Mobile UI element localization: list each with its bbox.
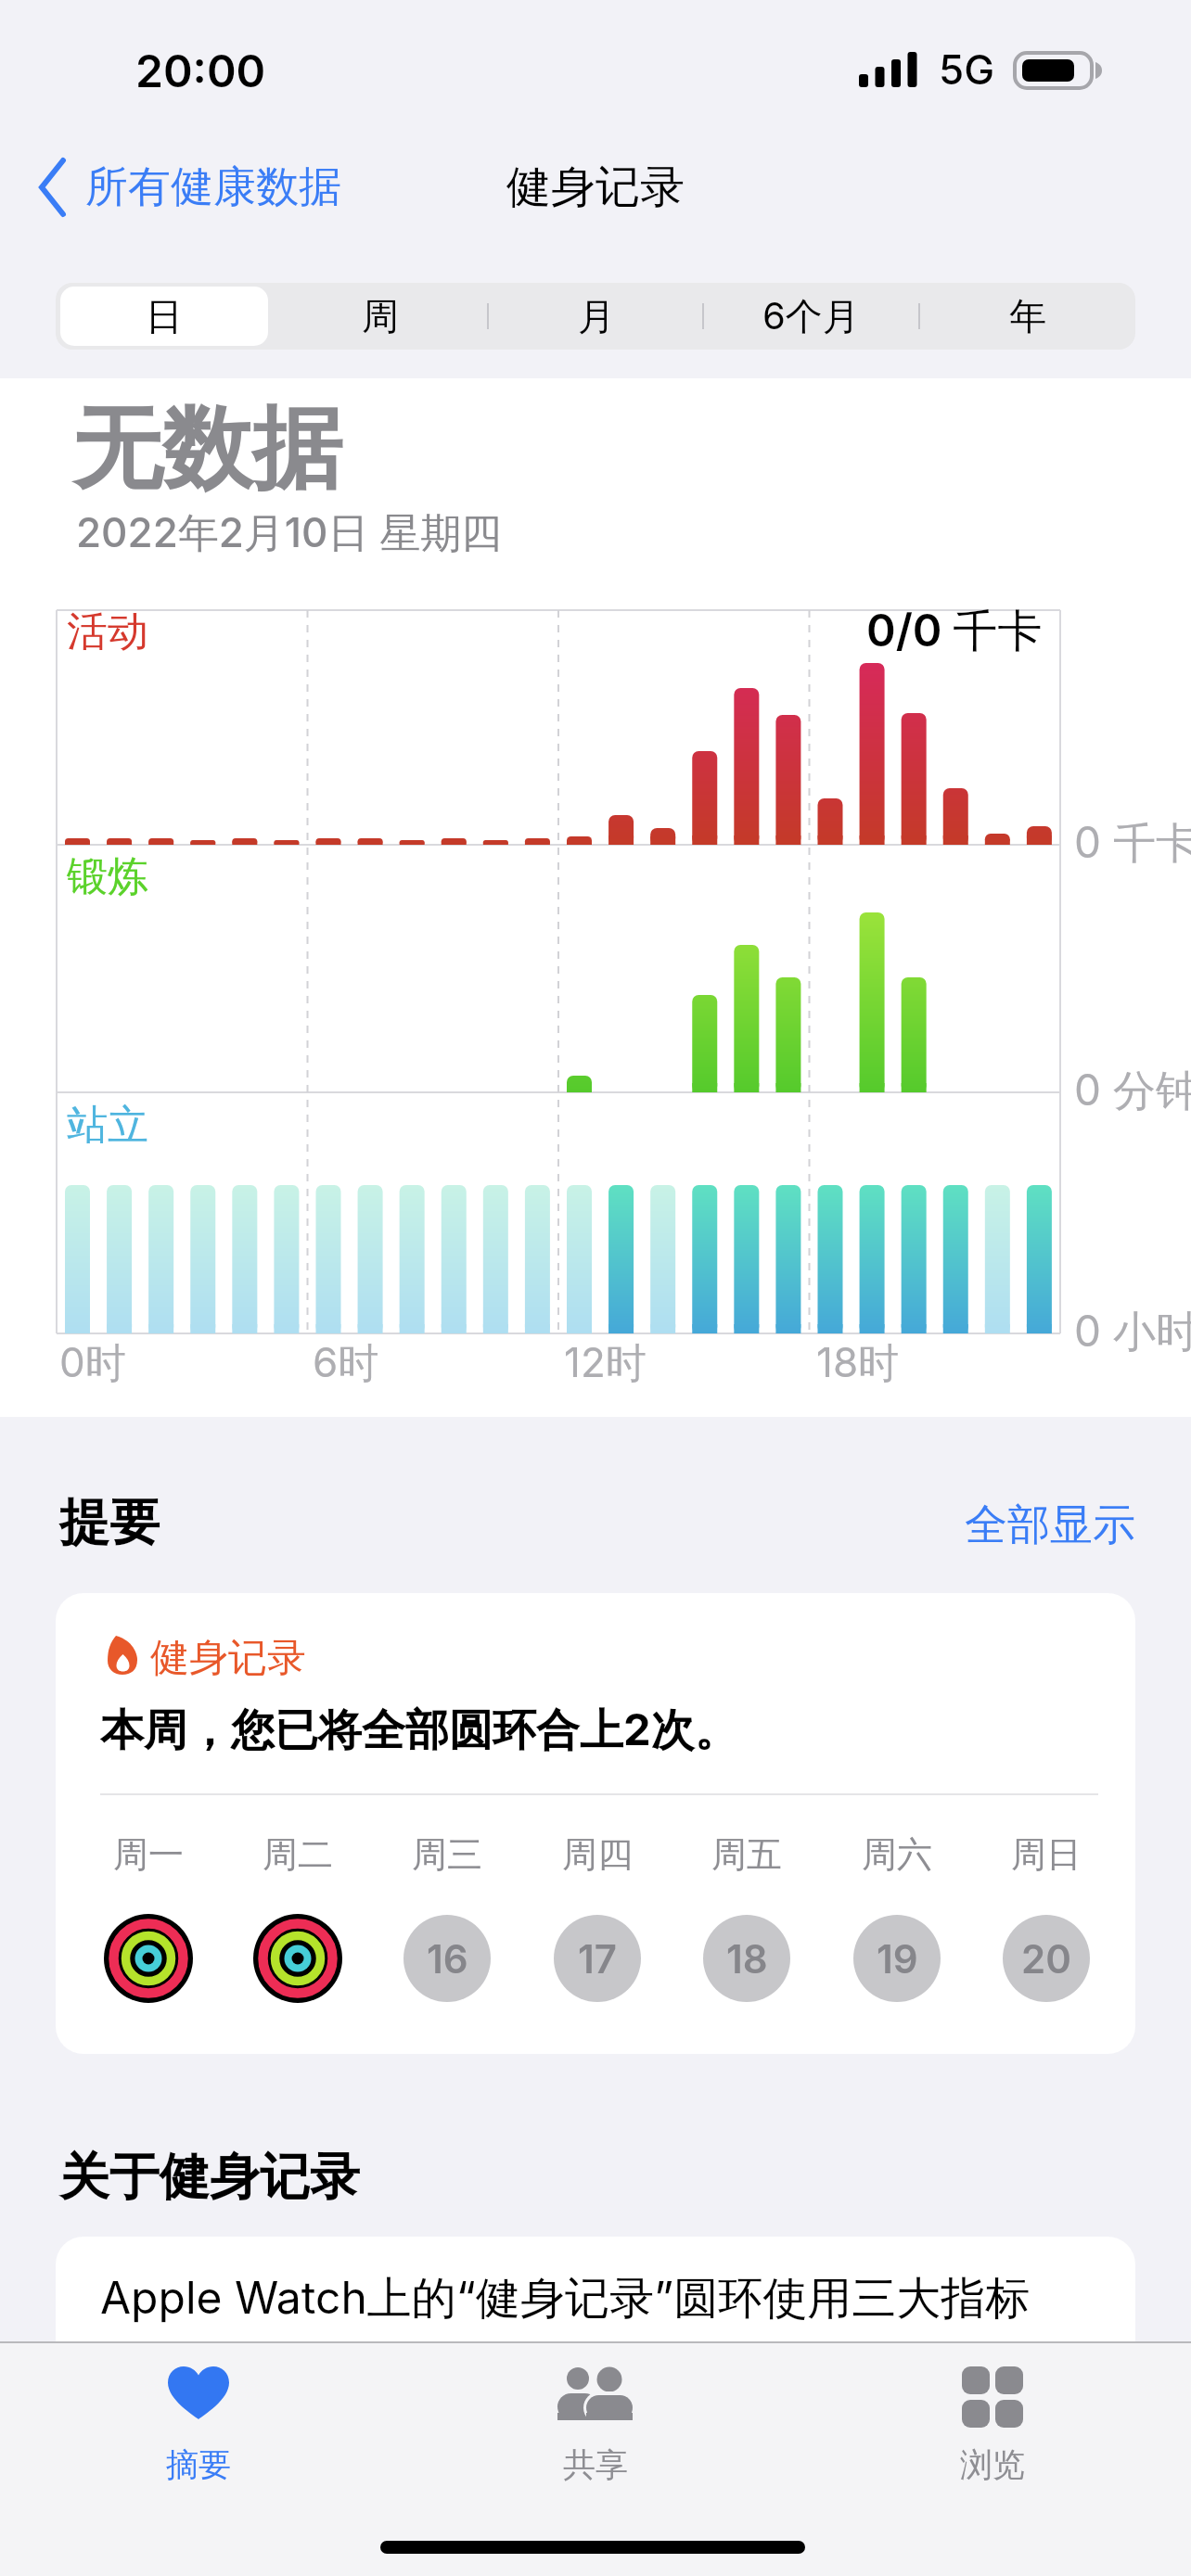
button[interactable]: 6个月 <box>703 283 919 350</box>
button[interactable]: 周 <box>272 283 488 350</box>
staticText: 周一 <box>113 1832 184 1877</box>
button[interactable]: 摘要 <box>65 2346 332 2504</box>
staticText: 0/0 千卡 <box>866 603 1043 659</box>
staticText: 无数据 <box>72 393 342 506</box>
staticText: 周六 <box>862 1832 932 1877</box>
staticText: 浏览 <box>960 2444 1025 2485</box>
staticText: 19 <box>877 1935 918 1983</box>
staticText: 18时 <box>816 1337 900 1389</box>
staticText: 本周，您已将全部圆环合上2次。 <box>100 1702 738 1757</box>
staticText: 提要 <box>59 1491 160 1554</box>
staticText: 20:00 <box>135 44 266 97</box>
staticText: 健身记录 <box>506 159 685 215</box>
staticText: 年 <box>1009 293 1046 339</box>
staticText: 0时 <box>59 1337 126 1389</box>
staticText: 周 <box>362 293 399 339</box>
staticText: Apple Watch上的“健身记录”圆环使用三大指标 <box>100 2270 1031 2327</box>
button[interactable]: 年 <box>919 283 1135 350</box>
staticText: 17 <box>578 1935 617 1983</box>
staticText: 所有健康数据 <box>85 160 341 214</box>
staticText: 0 分钟 <box>1074 1064 1191 1117</box>
staticText: 6时 <box>313 1337 379 1389</box>
staticText: 16 <box>427 1935 468 1983</box>
staticText: 全部显示 <box>965 1498 1135 1552</box>
button[interactable]: 全部显示 <box>764 1498 1135 1552</box>
staticText: 周日 <box>1011 1832 1082 1877</box>
staticText: 健身记录 <box>150 1634 306 1683</box>
staticText: 6个月 <box>762 293 860 340</box>
staticText: 18 <box>726 1935 768 1983</box>
staticText: 20 <box>1021 1935 1071 1983</box>
staticText: 周二 <box>263 1832 333 1877</box>
staticText: 周三 <box>412 1832 482 1877</box>
staticText: 周四 <box>562 1832 633 1877</box>
staticText: 锻炼 <box>67 851 148 902</box>
button[interactable]: 月 <box>488 283 704 350</box>
staticText: 摘要 <box>166 2444 231 2485</box>
staticText: 日 <box>146 293 183 339</box>
staticText: 共享 <box>563 2444 628 2485</box>
button[interactable]: Apple Watch上的“健身记录”圆环使用三大指标 <box>56 2237 1135 2441</box>
button[interactable]: 日 <box>56 283 272 350</box>
staticText: 0 小时 <box>1074 1305 1191 1358</box>
staticText: 活动 <box>67 606 148 657</box>
staticText: 站立 <box>67 1100 148 1151</box>
button[interactable]: 健身记录 <box>56 1593 1135 2054</box>
staticText: 周五 <box>711 1832 782 1877</box>
staticText: 月 <box>578 293 615 339</box>
button[interactable]: 浏览 <box>859 2346 1126 2504</box>
staticText: 5G <box>939 45 995 94</box>
staticText: 0 千卡 <box>1074 816 1191 870</box>
staticText: 12时 <box>564 1337 647 1389</box>
staticText: 关于健身记录 <box>59 2146 360 2209</box>
button[interactable]: 共享 <box>462 2346 729 2504</box>
button[interactable]: 所有健康数据 <box>37 148 341 226</box>
staticText: 2022年2月10日 星期四 <box>76 507 503 559</box>
